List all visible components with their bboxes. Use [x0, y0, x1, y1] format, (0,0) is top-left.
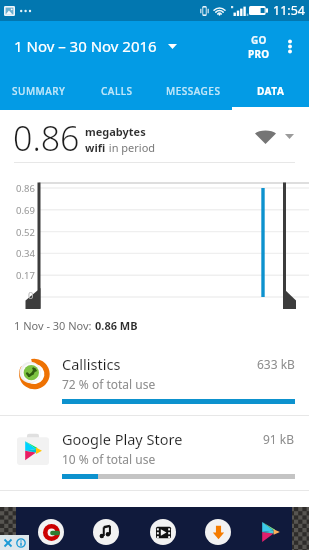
staticText: 5 % of total use: [62, 526, 149, 542]
staticText: MESSAGES: [166, 84, 221, 98]
button[interactable]: Close ad: [3, 538, 13, 548]
staticText: DATA: [257, 84, 285, 98]
staticText: 0.86: [16, 182, 35, 195]
staticText: 0.17: [16, 269, 35, 282]
staticText: 91 kB: [263, 431, 295, 447]
staticText: GO: [251, 33, 267, 47]
staticText: 1 Nov – 30 Nov 2016: [14, 36, 157, 56]
button[interactable]: Network filter: [253, 123, 296, 150]
staticText: in period: [106, 140, 156, 155]
button[interactable]: MESSAGES: [155, 71, 232, 110]
staticText: CALLS: [101, 84, 133, 98]
staticText: Google Play services: [62, 504, 201, 524]
button[interactable]: CALLS: [78, 71, 155, 110]
button[interactable]: 1 Nov – 30 Nov 2016: [0, 28, 189, 64]
button[interactable]: GO: [245, 31, 273, 63]
button[interactable]: Callistics: [0, 341, 309, 415]
button[interactable]: More options: [272, 21, 309, 71]
button[interactable]: SUMMARY: [0, 71, 78, 110]
staticText: megabytes: [85, 124, 146, 139]
staticText: Callistics: [62, 354, 121, 374]
staticText: 0.52: [16, 226, 35, 239]
button[interactable]: DATA: [232, 71, 309, 110]
staticText: 0: [28, 289, 34, 302]
staticText: 1 Nov - 30 Nov:: [14, 318, 95, 333]
staticText: 45 kB: [263, 506, 295, 522]
staticText: 11:54: [273, 2, 305, 19]
staticText: 633 kB: [257, 356, 295, 372]
button[interactable]: Ad info: [16, 538, 26, 548]
button[interactable]: Google Play Store: [0, 416, 309, 490]
button[interactable]: Google Play services: [0, 491, 309, 550]
staticText: 0.86 MB: [95, 318, 138, 333]
staticText: 0.69: [16, 204, 35, 217]
button[interactable]: Advertisement: [16, 507, 292, 550]
staticText: 0.86: [13, 115, 80, 161]
staticText: wifi: [85, 140, 106, 155]
staticText: SUMMARY: [12, 84, 66, 98]
staticText: Google Play Store: [62, 429, 183, 449]
staticText: PRO: [248, 47, 270, 61]
staticText: 10 % of total use: [62, 451, 156, 467]
staticText: 72 % of total use: [62, 376, 156, 392]
staticText: 0.34: [16, 247, 35, 260]
